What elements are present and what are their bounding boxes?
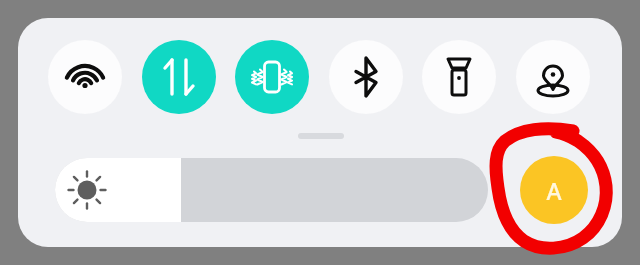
button[interactable]: Auto brightness	[520, 156, 588, 224]
button[interactable]: Location	[516, 40, 590, 114]
button[interactable]: Vibration	[235, 40, 309, 114]
button[interactable]: Wi-Fi	[48, 40, 122, 114]
button[interactable]: Bluetooth	[329, 40, 403, 114]
staticText: A	[546, 175, 562, 206]
button[interactable]: Mobile data	[142, 40, 216, 114]
button[interactable]: Brightness	[55, 158, 488, 222]
button[interactable]: Flashlight	[422, 40, 496, 114]
